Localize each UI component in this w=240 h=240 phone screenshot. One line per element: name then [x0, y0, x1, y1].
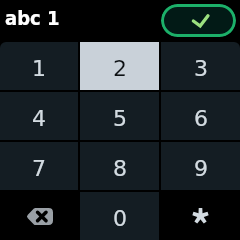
button[interactable]: 2	[80, 42, 159, 90]
staticText: 3	[194, 56, 208, 82]
button[interactable]: Confirm	[161, 4, 236, 37]
button[interactable]: 5	[80, 92, 159, 140]
staticText: 4	[32, 106, 46, 132]
staticText: 7	[32, 156, 46, 182]
button[interactable]: 8	[80, 142, 159, 190]
button[interactable]: 0	[80, 192, 159, 240]
button[interactable]: 4	[0, 92, 78, 140]
button[interactable]: 9	[161, 142, 240, 190]
button[interactable]: Asterisk	[161, 192, 240, 240]
button[interactable]: 1	[0, 42, 78, 90]
button[interactable]: 7	[0, 142, 78, 190]
staticText: 9	[194, 156, 208, 182]
staticText: abc 1	[5, 6, 60, 29]
staticText: 0	[113, 206, 127, 232]
button[interactable]: Backspace	[0, 192, 78, 240]
staticText: 5	[113, 106, 127, 132]
staticText: 6	[194, 106, 208, 132]
staticText: 1	[32, 56, 46, 82]
staticText: 8	[113, 156, 127, 182]
button[interactable]: 6	[161, 92, 240, 140]
staticText: 2	[113, 56, 127, 82]
button[interactable]: 3	[161, 42, 240, 90]
